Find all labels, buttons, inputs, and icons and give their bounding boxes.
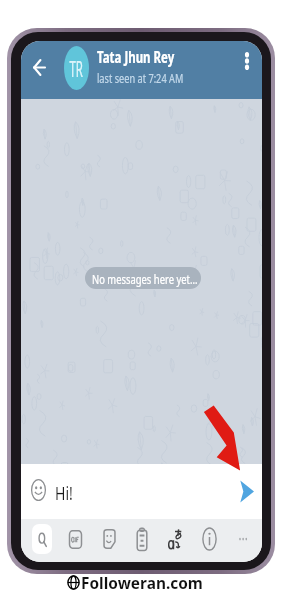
button[interactable]: GIF <box>65 524 85 554</box>
button[interactable]: Translate <box>165 524 185 554</box>
button[interactable]: Tata Jhun Rey <box>97 46 227 86</box>
staticText: Followeran.com <box>81 571 203 593</box>
button[interactable]: Stickers <box>99 524 119 554</box>
button[interactable]: Info <box>199 524 219 554</box>
staticText: Tata Jhun Rey <box>97 45 175 68</box>
button[interactable]: More options <box>235 49 259 73</box>
button[interactable]: Back <box>25 51 53 84</box>
button[interactable]: TR <box>64 46 89 90</box>
button[interactable]: Send <box>235 475 259 507</box>
button[interactable]: Emoji <box>25 474 51 506</box>
staticText: Hi! <box>55 481 73 506</box>
staticText: last seen at 7:24 AM <box>97 69 183 87</box>
button[interactable]: Search <box>32 524 52 554</box>
staticText: TR <box>69 54 84 82</box>
staticText: No messages here yet... <box>92 270 198 288</box>
button[interactable]: Clipboard <box>132 524 152 554</box>
button[interactable]: More <box>233 524 253 554</box>
